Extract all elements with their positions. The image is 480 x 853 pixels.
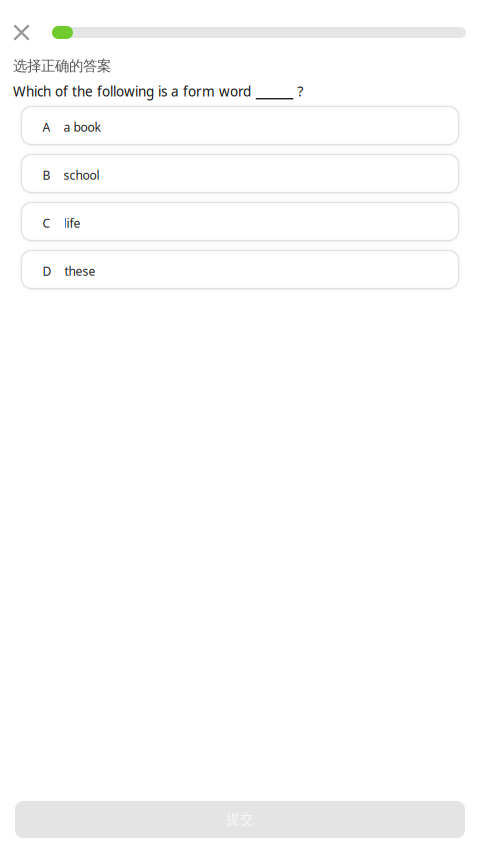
- button[interactable]: D: [21, 251, 458, 289]
- staticText: a book: [63, 119, 100, 135]
- staticText: 选择正确的答案: [13, 57, 111, 75]
- staticText: life: [63, 215, 80, 231]
- button[interactable]: A: [21, 107, 458, 145]
- staticText: these: [64, 263, 95, 279]
- staticText: C: [42, 215, 50, 231]
- button[interactable]: C: [21, 203, 458, 241]
- staticText: B: [42, 167, 50, 183]
- button[interactable]: Close: [13, 24, 30, 41]
- staticText: Which of the following is a form word: [13, 82, 251, 100]
- staticText: school: [63, 167, 99, 183]
- staticText: 提交: [226, 811, 254, 828]
- button[interactable]: B: [21, 155, 458, 193]
- staticText: A: [42, 119, 50, 135]
- staticText: ?: [298, 82, 304, 100]
- staticText: D: [42, 263, 51, 279]
